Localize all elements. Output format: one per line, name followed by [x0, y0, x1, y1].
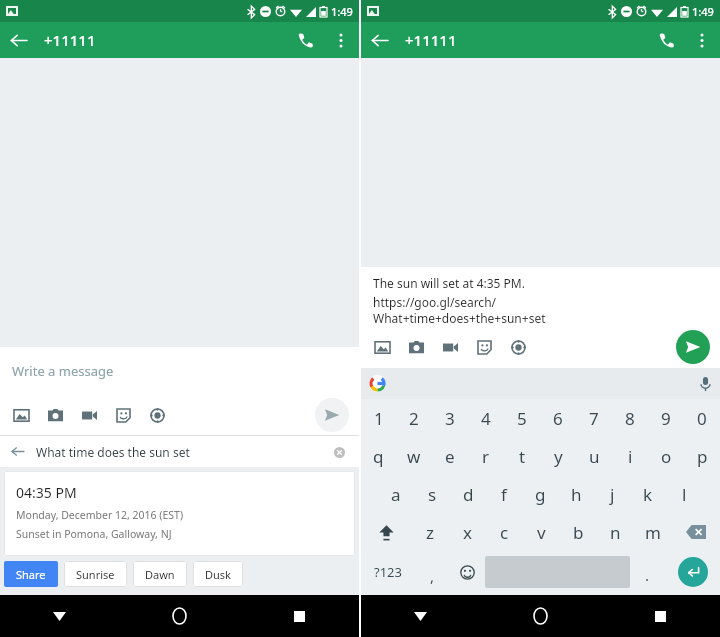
staticText: n	[610, 521, 621, 544]
button[interactable]: 4	[468, 399, 504, 437]
staticText: 6	[553, 407, 563, 430]
button[interactable]: e	[432, 437, 468, 475]
button[interactable]: Dusk	[193, 561, 243, 587]
staticText: a	[391, 483, 401, 506]
button[interactable]: 6	[540, 399, 576, 437]
staticText: e	[445, 445, 455, 468]
button[interactable]: 8	[612, 399, 648, 437]
staticText: 8	[625, 407, 635, 430]
button[interactable]: Video	[72, 398, 106, 432]
button[interactable]: More options	[684, 22, 720, 58]
button[interactable]: What time does the sun set	[0, 436, 359, 467]
button[interactable]: i	[612, 437, 648, 475]
button[interactable]: a	[378, 475, 414, 513]
staticText: z	[426, 521, 434, 544]
button[interactable]: x	[449, 513, 486, 551]
button[interactable]: u	[576, 437, 612, 475]
button[interactable]: 5	[504, 399, 540, 437]
button[interactable]: 7	[576, 399, 612, 437]
button[interactable]: Back	[361, 595, 480, 637]
button[interactable]: Camera	[38, 398, 72, 432]
button[interactable]: Shift	[361, 513, 411, 551]
button[interactable]: Back	[0, 595, 119, 637]
button[interactable]: y	[540, 437, 576, 475]
button[interactable]: Dawn	[133, 561, 187, 587]
button[interactable]: ?123	[361, 551, 415, 593]
staticText: p	[697, 445, 708, 468]
button[interactable]: 04:35 PM	[4, 471, 355, 556]
button[interactable]: b	[560, 513, 597, 551]
button[interactable]: Back	[361, 22, 397, 58]
button[interactable]: More options	[323, 22, 359, 58]
button[interactable]: Stickers	[106, 398, 140, 432]
button[interactable]: Recents	[600, 595, 720, 637]
button[interactable]: m	[634, 513, 671, 551]
staticText: v	[537, 521, 546, 544]
button[interactable]: Location	[501, 330, 535, 364]
button[interactable]: Stickers	[467, 330, 501, 364]
button[interactable]: Share	[4, 561, 58, 587]
staticText: Write a message	[12, 362, 114, 380]
button[interactable]: Video	[433, 330, 467, 364]
button[interactable]: Sunrise	[64, 561, 127, 587]
staticText: t	[519, 445, 526, 468]
button[interactable]: j	[594, 475, 630, 513]
button[interactable]: Location	[140, 398, 174, 432]
button[interactable]: 1	[361, 399, 396, 437]
button[interactable]: Emoji	[450, 551, 485, 593]
staticText: Dusk	[205, 567, 231, 582]
staticText: Sunset in Pomona, Galloway, NJ	[16, 527, 172, 541]
button[interactable]: 0	[684, 399, 720, 437]
button[interactable]: p	[684, 437, 720, 475]
button[interactable]: c	[486, 513, 523, 551]
button[interactable]: Clear	[329, 442, 349, 462]
button[interactable]: d	[450, 475, 486, 513]
button[interactable]: +11111	[44, 30, 96, 50]
button[interactable]: Send	[676, 330, 710, 364]
staticText: x	[463, 521, 472, 544]
button[interactable]: g	[522, 475, 558, 513]
button[interactable]: s	[414, 475, 450, 513]
button[interactable]: Home	[480, 595, 600, 637]
button[interactable]: Enter	[665, 551, 720, 593]
button[interactable]: Camera	[399, 330, 433, 364]
button[interactable]: +11111	[405, 30, 457, 50]
staticText: 1:49	[331, 4, 353, 19]
button[interactable]: .	[630, 551, 665, 593]
staticText: 3	[445, 407, 455, 430]
button[interactable]: Send	[315, 398, 349, 432]
button[interactable]: q	[361, 437, 396, 475]
button[interactable]: n	[597, 513, 634, 551]
button[interactable]: Home	[119, 595, 239, 637]
button[interactable]: w	[396, 437, 432, 475]
button[interactable]: Call	[648, 22, 684, 58]
staticText: m	[645, 521, 661, 544]
button[interactable]: Gallery	[365, 330, 399, 364]
button[interactable]: v	[523, 513, 560, 551]
button[interactable]: l	[666, 475, 702, 513]
button[interactable]: r	[468, 437, 504, 475]
staticText: Monday, December 12, 2016 (EST)	[16, 508, 184, 522]
button[interactable]: z	[411, 513, 449, 551]
button[interactable]: Back	[0, 22, 36, 58]
button[interactable]: t	[504, 437, 540, 475]
staticText: k	[643, 483, 653, 506]
button[interactable]: Gallery	[4, 398, 38, 432]
button[interactable]: 2	[396, 399, 432, 437]
staticText: Share	[16, 567, 46, 582]
button[interactable]: Call	[287, 22, 323, 58]
button[interactable]: f	[486, 475, 522, 513]
button[interactable]: k	[630, 475, 666, 513]
button[interactable]: h	[558, 475, 594, 513]
staticText: 7	[589, 407, 599, 430]
button[interactable]: 9	[648, 399, 684, 437]
button[interactable]: o	[648, 437, 684, 475]
button[interactable]: ,	[415, 551, 450, 593]
staticText: w	[407, 445, 421, 468]
staticText: 0	[697, 407, 707, 430]
button[interactable]: Recents	[239, 595, 359, 637]
button[interactable]: 3	[432, 399, 468, 437]
button[interactable]: Backspace	[671, 513, 720, 551]
staticText: What time does the sun set	[36, 444, 190, 460]
